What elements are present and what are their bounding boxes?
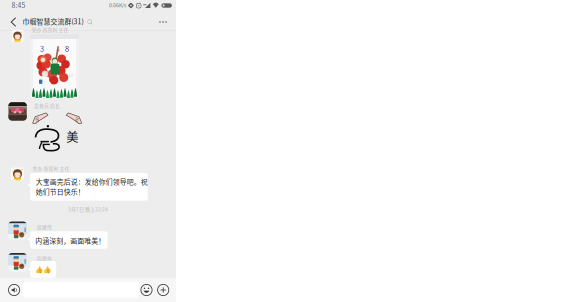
staticText: 段建伟 <box>37 255 52 262</box>
staticText: 段建伟 <box>37 223 52 230</box>
staticText: 内涵深刻，画面唯美！ <box>35 235 105 245</box>
staticText: 0.06K/s <box>109 1 126 9</box>
staticText: 党办 张凯利 主任 <box>32 165 69 172</box>
button[interactable]: More <box>154 14 172 30</box>
staticText: 美 <box>66 128 78 145</box>
button[interactable]: More options <box>154 281 172 299</box>
staticText: 12 <box>69 74 73 78</box>
button[interactable]: Voice message <box>5 281 23 299</box>
staticText: 3月7日 晚上22:24 <box>68 205 108 213</box>
staticText: 8 <box>65 43 69 54</box>
button[interactable]: Emoji <box>137 281 155 299</box>
button[interactable]: Back <box>6 14 21 30</box>
staticText: 吴艳兵 局长 <box>34 102 60 109</box>
staticText: 3 <box>40 43 44 54</box>
staticText: 巾帼智慧交流群(31) <box>22 16 83 26</box>
staticText: 8:45 <box>11 0 25 10</box>
staticText: 👍👍 <box>35 266 51 273</box>
staticText: 大宝画完后说：发给你们领导吧。祝她们节日快乐！ <box>36 177 148 196</box>
staticText: 党办 张凯利 主任 <box>31 26 68 33</box>
